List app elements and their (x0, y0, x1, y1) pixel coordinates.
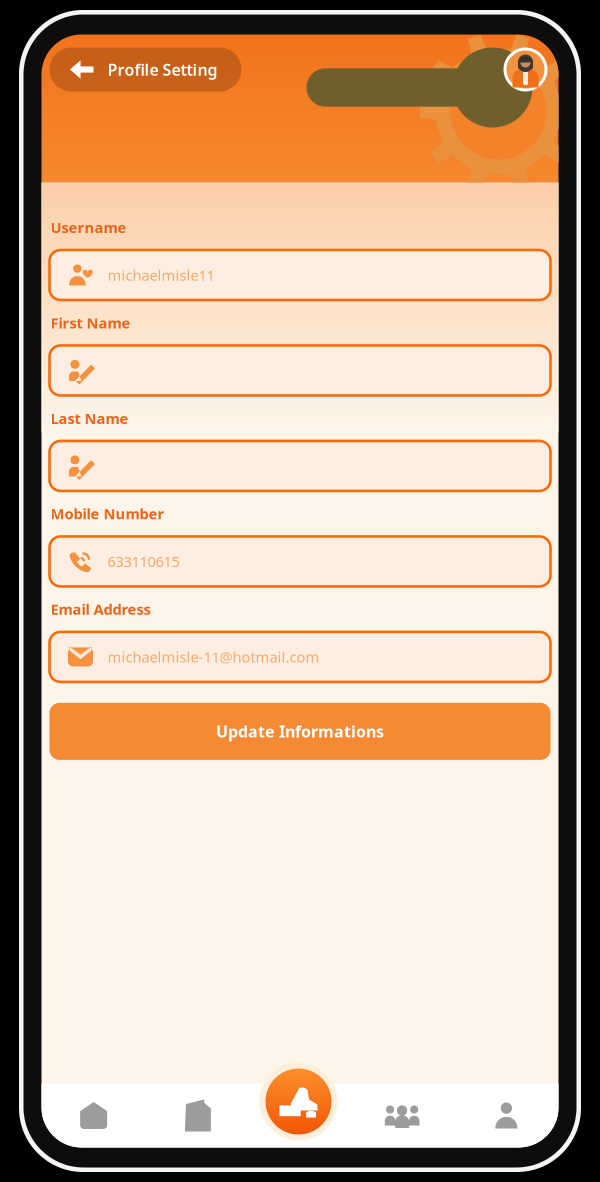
staticText: Email Address (50, 599, 150, 619)
staticText: michaelmisle11 (107, 265, 214, 285)
staticText: Mobile Number (50, 504, 164, 523)
button[interactable]: michaelmisle11 (49, 250, 550, 300)
button[interactable]: Home (41, 1083, 146, 1147)
staticText: First Name (50, 313, 130, 332)
button[interactable]: Update Informations (49, 703, 550, 760)
button[interactable]: 633110615 (49, 536, 550, 586)
button[interactable]: Profile Setting (49, 47, 241, 91)
button[interactable]: Scan (259, 1062, 337, 1140)
staticText: Profile Setting (107, 59, 217, 80)
button[interactable]: Community (350, 1083, 454, 1147)
staticText: michaelmisle-11@hotmail.com (107, 647, 319, 667)
button[interactable]: Profile (454, 1083, 558, 1147)
button[interactable]: michaelmisle-11@hotmail.com (49, 632, 550, 682)
staticText: Last Name (50, 408, 128, 428)
button[interactable] (49, 345, 550, 395)
button[interactable] (49, 441, 550, 491)
staticText: 633110615 (107, 552, 179, 571)
staticText: Username (50, 217, 126, 237)
staticText: Update Informations (216, 721, 384, 742)
button[interactable]: Profile photo (503, 47, 547, 91)
button[interactable]: Products (146, 1083, 250, 1147)
